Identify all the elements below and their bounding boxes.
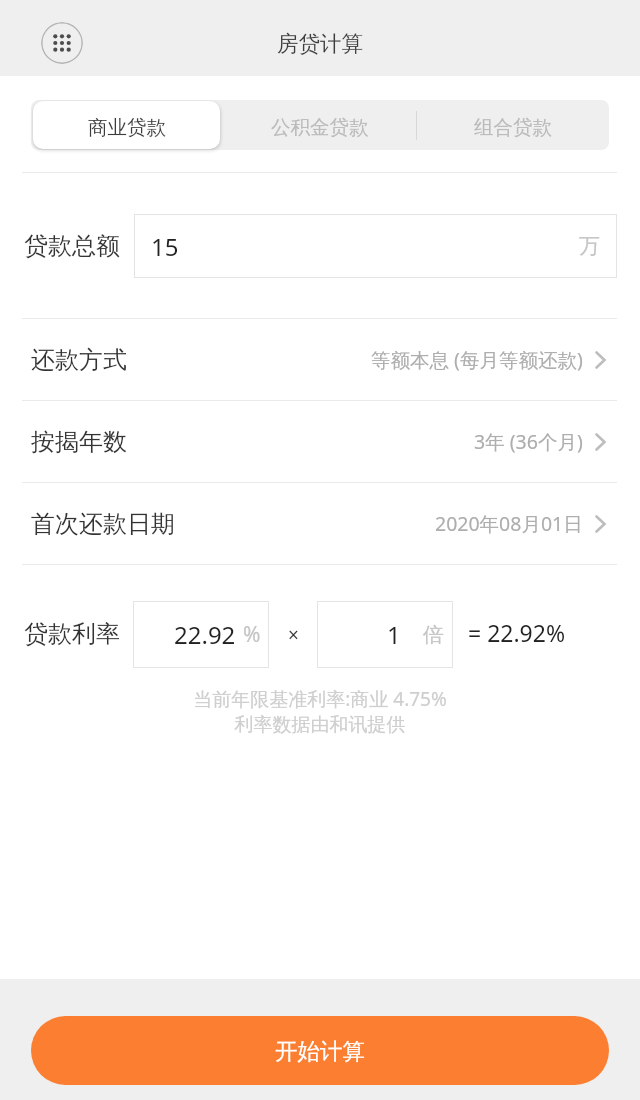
- button[interactable]: 组合贷款: [417, 100, 609, 150]
- staticText: 当前年限基准利率:商业 4.75%: [193, 686, 447, 712]
- staticText: 万: [579, 233, 600, 259]
- staticText: 15: [151, 230, 179, 263]
- button[interactable]: 开始计算: [31, 1016, 609, 1085]
- staticText: 22.92: [174, 618, 236, 651]
- button[interactable]: 按揭年数: [0, 401, 640, 482]
- button[interactable]: 公积金贷款: [224, 100, 416, 150]
- staticText: 开始计算: [275, 1037, 365, 1065]
- staticText: 商业贷款: [88, 115, 166, 140]
- staticText: 倍: [423, 622, 444, 648]
- staticText: 按揭年数: [31, 427, 127, 457]
- staticText: 组合贷款: [474, 115, 552, 140]
- staticText: 还款方式: [31, 345, 127, 375]
- button[interactable]: 15: [134, 214, 617, 278]
- staticText: 首次还款日期: [31, 509, 175, 539]
- staticText: 利率数据由和讯提供: [0, 713, 640, 737]
- staticText: 公积金贷款: [271, 115, 369, 140]
- staticText: 3年 (36个月): [474, 428, 583, 455]
- button[interactable]: 还款方式: [0, 319, 640, 400]
- staticText: 贷款总额: [24, 231, 120, 261]
- staticText: 2020年08月01日: [435, 510, 583, 537]
- button[interactable]: 1: [317, 601, 453, 668]
- staticText: = 22.92%: [468, 617, 566, 648]
- staticText: 房贷计算: [277, 30, 363, 57]
- button[interactable]: 首次还款日期: [0, 483, 640, 564]
- staticText: ×: [288, 622, 299, 648]
- button[interactable]: Apps: [41, 22, 83, 64]
- staticText: 1: [387, 618, 401, 651]
- staticText: 等额本息 (每月等额还款): [371, 346, 583, 373]
- button[interactable]: 商业贷款: [33, 101, 220, 149]
- staticText: 贷款利率: [24, 619, 120, 649]
- button[interactable]: 22.92: [133, 601, 269, 668]
- staticText: %: [243, 620, 261, 649]
